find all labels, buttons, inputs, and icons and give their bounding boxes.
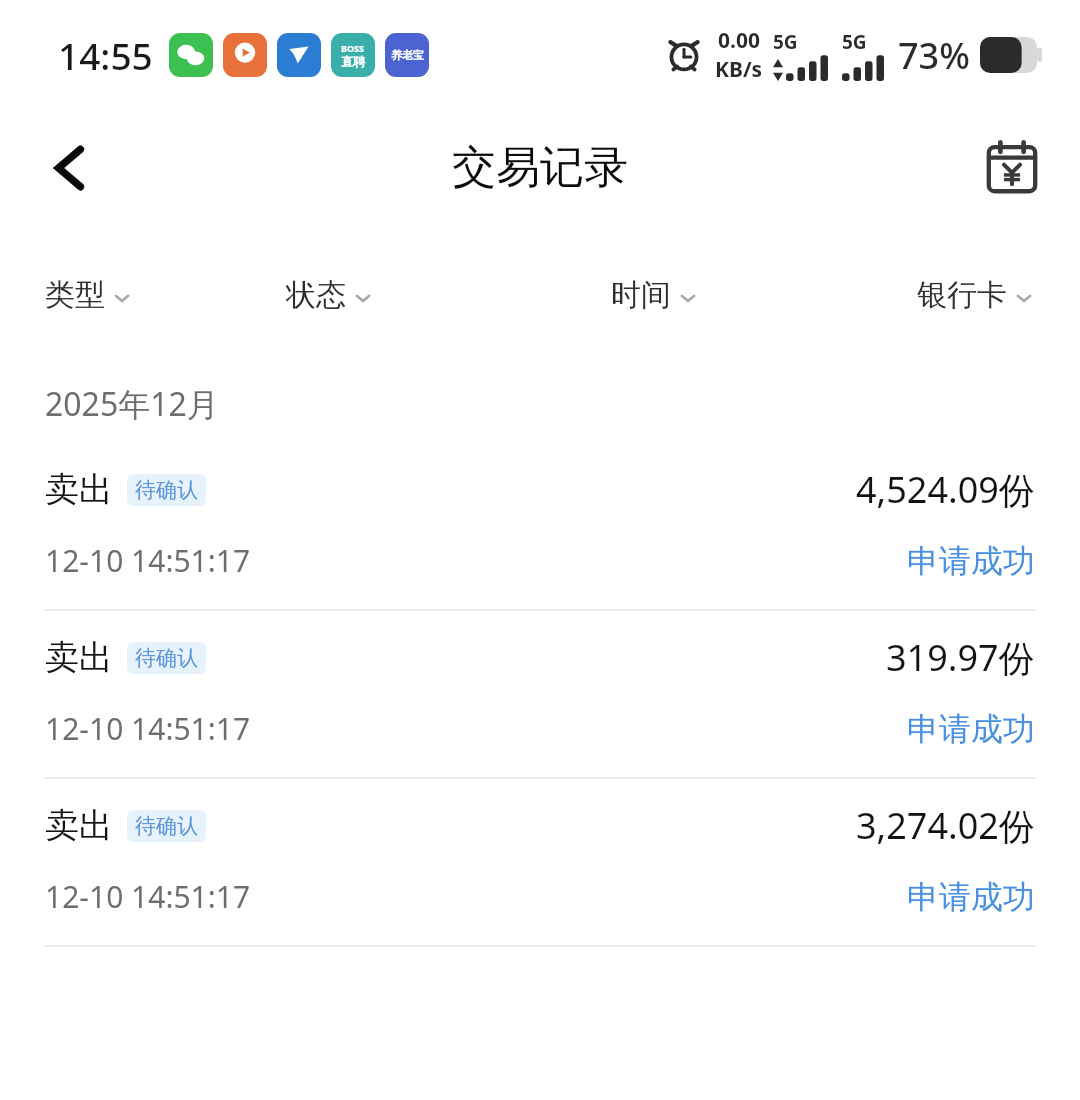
- staticText: 时间: [611, 276, 671, 314]
- staticText: 2025年12月: [45, 382, 219, 426]
- staticText: 0.00: [718, 26, 760, 55]
- staticText: 12-10 14:51:17: [45, 876, 251, 917]
- staticText: 状态: [286, 276, 346, 314]
- staticText: 申请成功: [907, 877, 1035, 917]
- staticText: 73%: [898, 31, 970, 80]
- staticText: 卖出: [45, 636, 113, 679]
- staticText: 直聘: [341, 54, 365, 69]
- staticText: 申请成功: [907, 709, 1035, 749]
- staticText: 3,274.02份: [856, 801, 1035, 850]
- button[interactable]: Calendar filter: [968, 124, 1056, 212]
- staticText: 申请成功: [907, 541, 1035, 581]
- staticText: 养老宝: [391, 48, 424, 62]
- staticText: 类型: [45, 276, 105, 314]
- button[interactable]: Back: [22, 120, 118, 216]
- staticText: BOSS: [341, 42, 365, 54]
- button[interactable]: 状态: [286, 276, 374, 314]
- staticText: 交易记录: [452, 140, 628, 195]
- button[interactable]: 银行卡: [917, 276, 1035, 314]
- button[interactable]: 时间: [611, 276, 699, 314]
- button[interactable]: 类型: [45, 276, 133, 314]
- staticText: 5G: [773, 29, 798, 55]
- button[interactable]: 卖出: [0, 443, 1080, 611]
- staticText: 卖出: [45, 468, 113, 511]
- staticText: 待确认: [135, 645, 198, 671]
- staticText: 卖出: [45, 804, 113, 847]
- staticText: 待确认: [135, 477, 198, 503]
- staticText: 14:55: [58, 30, 153, 80]
- staticText: 待确认: [135, 813, 198, 839]
- button[interactable]: 卖出: [0, 611, 1080, 779]
- staticText: 4,524.09份: [856, 465, 1035, 514]
- staticText: 5G: [842, 29, 867, 55]
- staticText: 银行卡: [917, 276, 1007, 314]
- button[interactable]: 卖出: [0, 779, 1080, 947]
- staticText: 319.97份: [886, 633, 1035, 682]
- staticText: 12-10 14:51:17: [45, 540, 251, 581]
- staticText: 12-10 14:51:17: [45, 708, 251, 749]
- staticText: KB/s: [715, 55, 763, 84]
